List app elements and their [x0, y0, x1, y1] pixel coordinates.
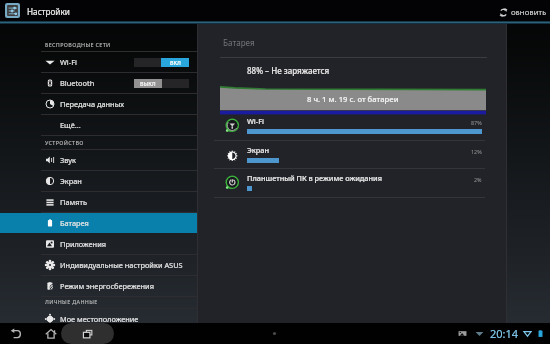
staticText: ВЫКЛ: [140, 80, 156, 87]
staticText: Wi-Fi: [60, 57, 77, 67]
button[interactable]: Планшетный ПК в режиме ожидания: [198, 172, 506, 201]
button[interactable]: ВЫКЛ: [134, 79, 189, 88]
staticText: Экран: [60, 176, 82, 186]
button[interactable]: Wi-Fi: [0, 52, 197, 72]
button[interactable]: Home: [39, 323, 63, 344]
button[interactable]: Bluetooth: [0, 73, 197, 93]
staticText: Батарея: [60, 218, 89, 228]
button[interactable]: Экран: [198, 144, 506, 173]
staticText: Индивидуальные настройки ASUS: [60, 260, 183, 270]
button[interactable]: Ещё...: [0, 115, 197, 135]
button[interactable]: Передача данных: [0, 94, 197, 114]
staticText: 20:14: [490, 326, 519, 341]
staticText: Приложения: [60, 239, 107, 249]
staticText: УСТРОЙСТВО: [45, 139, 84, 146]
staticText: ЛИЧНЫЕ ДАННЫЕ: [45, 298, 98, 305]
staticText: Звук: [60, 155, 77, 165]
button[interactable]: Батарея: [0, 213, 197, 233]
staticText: Bluetooth: [60, 78, 95, 88]
staticText: Настройки: [27, 6, 70, 17]
staticText: Экран: [247, 145, 270, 155]
staticText: Wi-Fi: [247, 116, 265, 126]
staticText: Мое местоположение: [60, 314, 139, 324]
staticText: 12%: [471, 148, 482, 155]
staticText: Память: [60, 197, 87, 207]
button[interactable]: Звук: [0, 150, 197, 170]
button[interactable]: Мое местоположение: [0, 309, 197, 329]
button[interactable]: Wi-Fi: [198, 115, 506, 144]
staticText: ВКЛ: [170, 59, 181, 66]
button[interactable]: 8 ч. 1 м. 19 с. от батареи: [220, 85, 486, 115]
staticText: 8 ч. 1 м. 19 с. от батареи: [307, 94, 399, 104]
button[interactable]: Индивидуальные настройки ASUS: [0, 255, 197, 275]
button[interactable]: ОБНОВИТЬ: [499, 0, 547, 24]
button[interactable]: ВКЛ: [134, 58, 189, 67]
button[interactable]: Приложения: [0, 234, 197, 254]
staticText: Планшетный ПК в режиме ожидания: [247, 173, 382, 183]
staticText: 88% – Не заряжается: [247, 65, 330, 76]
staticText: Режим энергосбережения: [60, 281, 154, 291]
staticText: Передача данных: [60, 99, 125, 109]
button[interactable]: Экран: [0, 171, 197, 191]
button[interactable]: Память: [0, 192, 197, 212]
staticText: 2%: [474, 176, 482, 183]
staticText: ОБНОВИТЬ: [511, 8, 547, 16]
staticText: 87%: [471, 119, 482, 126]
button[interactable]: Settings: [5, 3, 20, 18]
button[interactable]: Режим энергосбережения: [0, 276, 197, 296]
staticText: Батарея: [223, 37, 255, 48]
button[interactable]: Recent apps: [61, 323, 114, 344]
staticText: Ещё...: [60, 120, 81, 130]
staticText: БЕСПРОВОДНЫЕ СЕТИ: [45, 41, 111, 48]
button[interactable]: Back: [4, 323, 28, 344]
